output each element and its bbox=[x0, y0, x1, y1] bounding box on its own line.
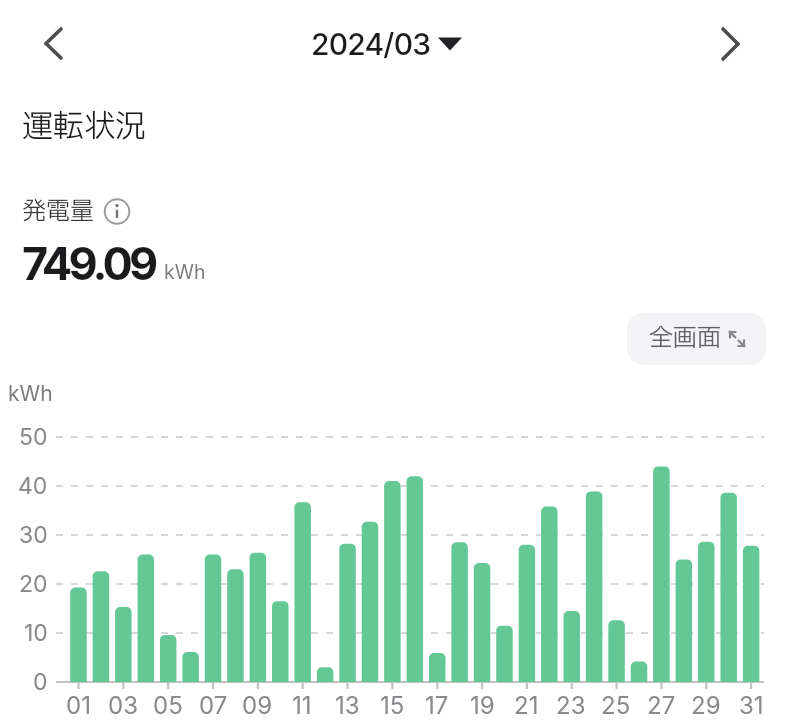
staticText: kWh bbox=[164, 260, 206, 284]
staticText: 749.09 bbox=[22, 236, 155, 290]
staticText: 29 bbox=[691, 691, 721, 719]
staticText: 全画面 bbox=[649, 321, 721, 357]
staticText: 03 bbox=[108, 691, 138, 719]
staticText: 15 bbox=[380, 691, 405, 719]
button[interactable] bbox=[33, 16, 73, 72]
button[interactable] bbox=[710, 16, 750, 72]
staticText: 発電量 bbox=[22, 194, 94, 228]
staticText: 31 bbox=[739, 691, 764, 719]
staticText: 01 bbox=[66, 691, 91, 719]
staticText: 05 bbox=[153, 691, 183, 719]
staticText: 09 bbox=[242, 691, 273, 719]
staticText: 11 bbox=[292, 691, 312, 719]
staticText: 21 bbox=[514, 691, 539, 719]
button[interactable]: 2024/03 bbox=[291, 14, 451, 74]
staticText: 10 bbox=[24, 619, 48, 647]
staticText: 40 bbox=[18, 472, 48, 500]
staticText: 17 bbox=[425, 691, 449, 719]
staticText: 23 bbox=[556, 691, 586, 719]
staticText: 07 bbox=[199, 691, 228, 719]
staticText: 27 bbox=[647, 691, 676, 719]
staticText: 20 bbox=[19, 570, 48, 598]
staticText: kWh bbox=[8, 381, 53, 405]
staticText: 運転状況 bbox=[22, 104, 146, 150]
button[interactable]: 全画面 bbox=[627, 313, 766, 365]
staticText: 19 bbox=[470, 691, 495, 719]
staticText: 30 bbox=[19, 521, 48, 549]
staticText: 25 bbox=[601, 691, 631, 719]
staticText: 0 bbox=[33, 668, 48, 696]
button[interactable] bbox=[101, 195, 133, 227]
staticText: 50 bbox=[19, 423, 48, 451]
staticText: 2024/03 bbox=[311, 26, 431, 62]
staticText: 13 bbox=[335, 691, 360, 719]
